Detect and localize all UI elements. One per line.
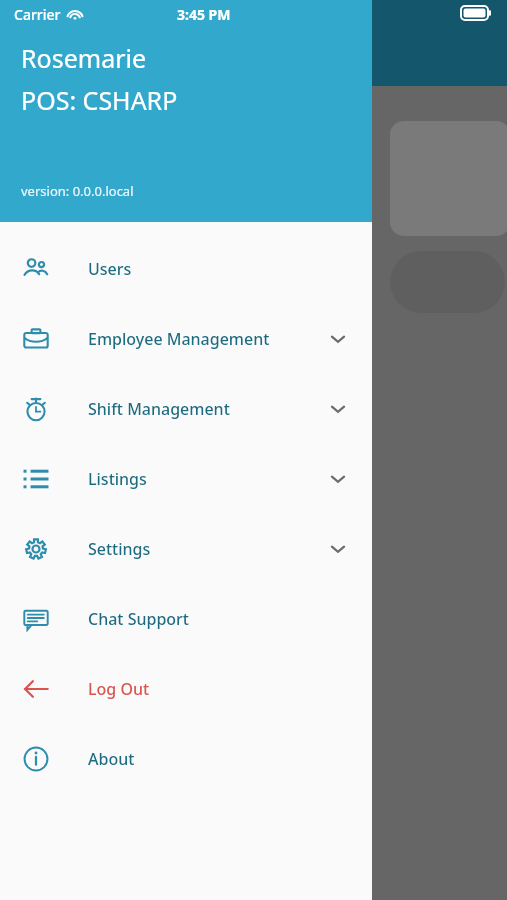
button[interactable]: Chat Support xyxy=(0,584,372,654)
staticText: Shift Management xyxy=(88,398,230,420)
staticText: 3:45 PM xyxy=(177,5,231,24)
other: Shift Management xyxy=(23,396,49,422)
button[interactable]: About xyxy=(0,724,372,794)
staticText: Rosemarie xyxy=(21,41,147,75)
staticText: About xyxy=(88,748,135,770)
staticText: Log Out xyxy=(88,678,150,700)
other: Listings xyxy=(23,466,49,492)
other: Settings xyxy=(23,536,49,562)
button[interactable]: Log Out xyxy=(0,654,372,724)
staticText: Chat Support xyxy=(88,608,189,630)
button[interactable]: Shift Management xyxy=(0,374,372,444)
other: Users xyxy=(23,256,49,282)
button[interactable]: Users xyxy=(0,234,372,304)
other: About xyxy=(23,746,49,772)
other: Employee Management xyxy=(23,326,49,352)
staticText: Listings xyxy=(88,468,147,490)
staticText: Users xyxy=(88,258,132,280)
staticText: Carrier xyxy=(14,5,61,24)
button[interactable]: Listings xyxy=(0,444,372,514)
button[interactable]: Employee Management xyxy=(0,304,372,374)
staticText: POS: CSHARP xyxy=(21,83,178,117)
staticText: Settings xyxy=(88,538,151,560)
other: Log Out xyxy=(23,676,49,702)
staticText: version: 0.0.0.local xyxy=(21,182,134,200)
staticText: Employee Management xyxy=(88,328,270,350)
button[interactable]: Settings xyxy=(0,514,372,584)
other: Chat Support xyxy=(23,606,49,632)
